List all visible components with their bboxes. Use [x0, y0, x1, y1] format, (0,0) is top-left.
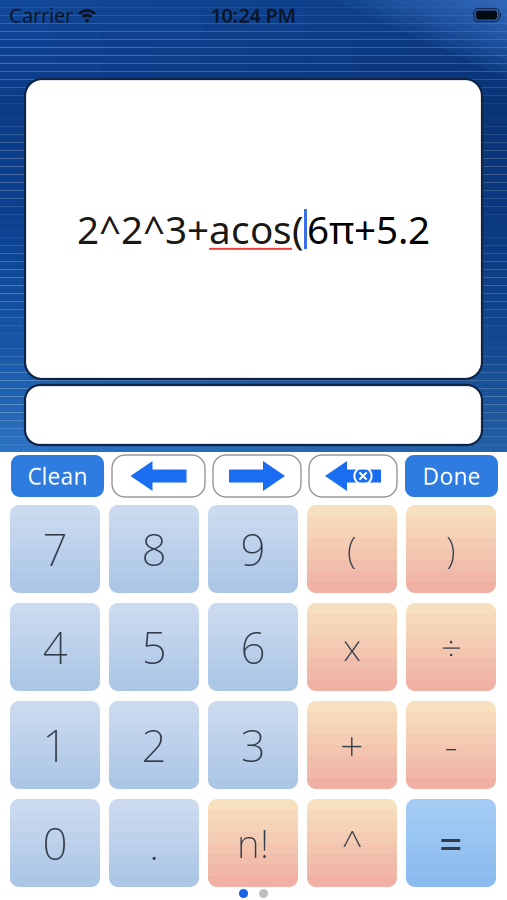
button[interactable]: - — [406, 701, 496, 789]
staticText: n! — [237, 817, 269, 869]
staticText: ^ — [341, 818, 362, 868]
button[interactable]: Move cursor right — [213, 455, 301, 497]
button[interactable]: 9 — [208, 505, 298, 593]
staticText: ÷ — [440, 622, 461, 672]
button[interactable]: 6 — [208, 603, 298, 691]
staticText: Done — [422, 461, 480, 491]
button[interactable]: ) — [406, 505, 496, 593]
button[interactable]: 7 — [10, 505, 100, 593]
button[interactable]: Done — [405, 455, 498, 497]
button[interactable]: n! — [208, 799, 298, 887]
staticText: 2 — [141, 716, 166, 774]
staticText: x — [343, 622, 361, 672]
button[interactable]: = — [406, 799, 496, 887]
staticText: 3 — [240, 716, 265, 774]
staticText: 5 — [141, 618, 166, 676]
staticText: 7 — [42, 520, 67, 578]
button[interactable]: Move cursor left — [112, 455, 205, 497]
staticText: ) — [446, 525, 456, 573]
staticText: 9 — [240, 520, 265, 578]
button[interactable]: x — [307, 603, 397, 691]
staticText: Clean — [27, 461, 87, 491]
button[interactable]: ( — [307, 505, 397, 593]
button[interactable]: + — [307, 701, 397, 789]
staticText: 6π+5.2 — [307, 203, 430, 255]
staticText: - — [444, 718, 457, 772]
staticText: 4 — [42, 618, 67, 676]
button[interactable]: 5 — [109, 603, 199, 691]
button[interactable]: Page 1 of 2 — [239, 889, 248, 898]
button[interactable]: 3 — [208, 701, 298, 789]
button[interactable]: 0 — [10, 799, 100, 887]
button[interactable]: 2 — [109, 701, 199, 789]
button[interactable]: ÷ — [406, 603, 496, 691]
button[interactable]: . — [109, 799, 199, 887]
button[interactable]: 1 — [10, 701, 100, 789]
button[interactable]: Delete — [309, 455, 397, 497]
staticText: ( — [347, 525, 357, 573]
staticText: 2^2^3+acos( — [77, 203, 304, 255]
staticText: = — [439, 816, 463, 870]
staticText: . — [149, 814, 159, 872]
button[interactable]: 8 — [109, 505, 199, 593]
button[interactable]: Page 2 of 2 — [259, 889, 268, 898]
staticText: Carrier — [9, 2, 73, 28]
button[interactable]: ^ — [307, 799, 397, 887]
staticText: 10:24 PM — [210, 2, 296, 28]
staticText: 8 — [141, 520, 166, 578]
staticText: 0 — [42, 814, 67, 872]
button[interactable]: Clean — [11, 455, 104, 497]
staticText: 1 — [42, 716, 67, 774]
staticText: + — [340, 718, 364, 772]
button[interactable]: 4 — [10, 603, 100, 691]
staticText: 6 — [240, 618, 265, 676]
